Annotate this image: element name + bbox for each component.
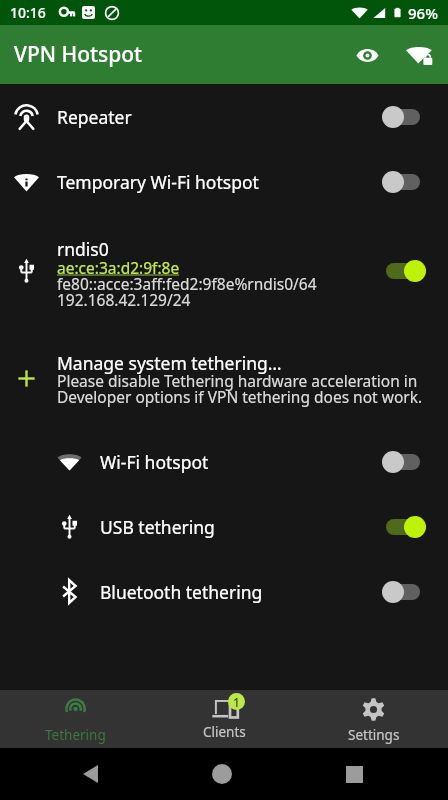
staticText: VPN Hotspot: [14, 40, 143, 69]
button[interactable]: Home: [156, 748, 288, 800]
button[interactable]: Wi-Fi hotspot: [0, 429, 448, 494]
staticText: ae:ce:3a:d2:9f:8e: [57, 257, 180, 278]
staticText: Bluetooth tethering: [100, 580, 382, 604]
staticText: 96%: [408, 3, 438, 23]
staticText: Temporary Wi-Fi hotspot: [57, 170, 382, 194]
staticText: rndis0: [57, 237, 109, 261]
staticText: fe80::acce:3aff:fed2:9f8e%rndis0/64: [57, 273, 317, 294]
staticText: Tethering: [45, 726, 106, 744]
button[interactable]: Settings: [299, 690, 448, 748]
staticText: Manage system tethering…: [57, 351, 282, 375]
staticText: Clients: [203, 723, 246, 741]
staticText: Repeater: [57, 105, 382, 129]
button[interactable]: USB tethering: [0, 494, 448, 559]
staticText: Settings: [348, 726, 400, 744]
button[interactable]: Recents: [288, 748, 420, 800]
button[interactable]: Manage system tethering…: [0, 327, 448, 429]
staticText: Please disable Tethering hardware accele…: [57, 370, 423, 407]
staticText: 10:16: [10, 3, 46, 22]
staticText: Wi-Fi hotspot: [100, 450, 382, 474]
button[interactable]: Bluetooth tethering: [0, 559, 448, 624]
button[interactable]: rndis0: [0, 214, 448, 327]
staticText: 1: [233, 694, 240, 710]
button[interactable]: Toggle visibility: [344, 32, 390, 78]
button[interactable]: Back: [24, 748, 156, 800]
button[interactable]: Temporary Wi-Fi hotspot: [0, 149, 448, 214]
button[interactable]: 1: [150, 690, 299, 748]
staticText: 192.168.42.129/24: [57, 289, 191, 310]
button[interactable]: Wi-Fi lock: [397, 32, 443, 78]
staticText: USB tethering: [100, 515, 382, 539]
button[interactable]: Repeater: [0, 84, 448, 149]
button[interactable]: Tethering: [0, 690, 150, 748]
